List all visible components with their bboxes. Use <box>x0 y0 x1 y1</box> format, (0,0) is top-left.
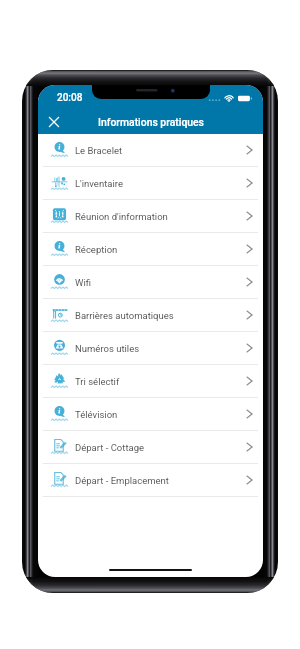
staticText: 20:08 <box>57 92 83 104</box>
staticText: Tri sélectif <box>75 376 120 387</box>
button[interactable]: Réunion d'information <box>38 200 263 233</box>
staticText: L'inventaire <box>75 178 123 189</box>
button[interactable]: Réception <box>38 233 263 266</box>
staticText: Réunion d'information <box>75 211 168 222</box>
staticText: Numéros utiles <box>75 343 140 354</box>
staticText: Le Bracelet <box>75 145 123 156</box>
button[interactable]: Wifi <box>38 266 263 299</box>
staticText: Départ - Cottage <box>75 442 145 453</box>
button[interactable]: Numéros utiles <box>38 332 263 365</box>
staticText: Barrières automatiques <box>75 310 174 321</box>
button[interactable]: Départ - Emplacement <box>38 464 263 497</box>
staticText: Réception <box>75 244 118 255</box>
button[interactable]: Close <box>38 110 263 134</box>
staticText: Informations pratiques <box>98 116 204 128</box>
button[interactable]: Départ - Cottage <box>38 431 263 464</box>
staticText: Wifi <box>75 277 92 288</box>
staticText: Télévision <box>75 409 118 420</box>
button[interactable]: Le Bracelet <box>38 134 263 167</box>
button[interactable]: Télévision <box>38 398 263 431</box>
button[interactable]: Close <box>44 112 64 132</box>
staticText: Départ - Emplacement <box>75 475 169 486</box>
button[interactable]: Barrières automatiques <box>38 299 263 332</box>
button[interactable]: Tri sélectif <box>38 365 263 398</box>
button[interactable]: L'inventaire <box>38 167 263 200</box>
